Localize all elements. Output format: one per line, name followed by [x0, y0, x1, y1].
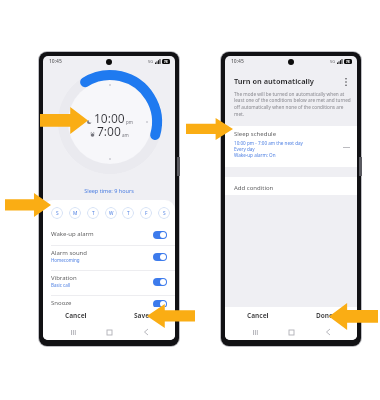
button[interactable]: S — [51, 207, 63, 219]
button[interactable]: Recents — [66, 325, 80, 339]
button[interactable]: Wake-up alarm — [43, 226, 175, 245]
staticText: T — [127, 210, 130, 217]
staticText: 10:00 pm - 7:00 am the next day — [234, 140, 303, 146]
staticText: Sleep schedule — [234, 130, 277, 138]
button[interactable]: T — [122, 207, 134, 219]
button[interactable]: Add condition — [225, 177, 357, 195]
staticText: 7:00 — [97, 123, 121, 139]
staticText: Wake-up alarm: On — [234, 152, 276, 158]
staticText: 10:45 — [49, 58, 62, 65]
staticText: Cancel — [65, 311, 87, 320]
staticText: M — [73, 210, 78, 217]
staticText: Save — [134, 311, 150, 320]
staticText: 78 — [164, 60, 168, 64]
button[interactable]: M — [69, 207, 81, 219]
button[interactable]: F — [140, 207, 152, 219]
staticText: The mode will be turned on automatically… — [234, 91, 352, 118]
staticText: Homecoming — [51, 257, 80, 263]
staticText: Add condition — [234, 184, 274, 192]
staticText: Done — [316, 311, 333, 320]
staticText: Every day — [234, 146, 255, 152]
staticText: 5G — [330, 59, 336, 64]
button[interactable]: T — [87, 207, 99, 219]
button[interactable]: Vibration — [43, 271, 175, 295]
staticText: Snooze — [51, 299, 72, 307]
button[interactable]: Snooze — [43, 296, 175, 320]
staticText: am — [122, 132, 129, 138]
staticText: W — [109, 210, 114, 217]
button[interactable]: Home — [102, 325, 116, 339]
button[interactable]: Sleep schedule — [225, 126, 357, 167]
button[interactable]: Cancel — [225, 307, 291, 324]
staticText: 10:45 — [231, 58, 244, 65]
staticText: T — [92, 210, 95, 217]
button[interactable]: S — [158, 207, 170, 219]
staticText: Sleep time: 9 hours — [43, 187, 175, 194]
staticText: S — [163, 210, 166, 217]
staticText: Basic call — [51, 282, 71, 288]
staticText: Alarm sound — [51, 249, 88, 257]
button[interactable]: Back — [139, 325, 153, 339]
staticText: S — [56, 210, 59, 217]
staticText: 5G — [148, 59, 154, 64]
staticText: 78 — [346, 60, 350, 64]
staticText: Cancel — [247, 311, 269, 320]
staticText: 10:00 — [94, 110, 125, 126]
button[interactable]: Done — [291, 307, 357, 324]
staticText: Turn on automatically — [234, 76, 340, 86]
button[interactable]: Home — [284, 325, 298, 339]
button[interactable]: Options — [341, 142, 351, 152]
button[interactable]: Alarm sound — [43, 246, 175, 270]
staticText: Vibration — [51, 274, 77, 282]
button[interactable]: Back — [321, 325, 335, 339]
button[interactable]: Save — [109, 307, 175, 324]
button[interactable]: Cancel — [43, 307, 109, 324]
button[interactable]: W — [105, 207, 117, 219]
staticText: pm — [126, 119, 133, 125]
button[interactable]: More options — [340, 76, 352, 88]
button[interactable]: Recents — [248, 325, 262, 339]
staticText: F — [145, 210, 148, 217]
staticText: Wake-up alarm — [51, 230, 94, 238]
